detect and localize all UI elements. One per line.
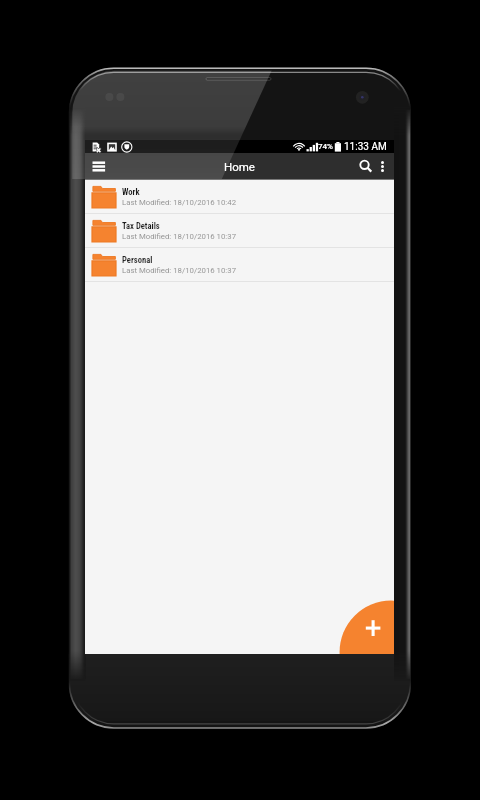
button[interactable]: Search (351, 154, 375, 178)
staticText: Last Modified: 18/10/2016 10:37 (122, 266, 237, 275)
staticText: 11:33 AM (344, 141, 387, 153)
staticText: Home (224, 160, 255, 173)
staticText: Work (122, 187, 140, 197)
staticText: Last Modified: 18/10/2016 10:37 (122, 232, 237, 241)
button[interactable]: Menu (85, 154, 110, 179)
staticText: Tax Details (122, 221, 160, 231)
button[interactable]: Personal (85, 248, 394, 282)
staticText: Personal (122, 255, 153, 265)
button[interactable]: Work (85, 180, 394, 214)
staticText: 74% (318, 142, 333, 151)
button[interactable]: Tax Details (85, 214, 394, 248)
button[interactable]: Add (338, 598, 394, 654)
staticText: Last Modified: 18/10/2016 10:42 (122, 198, 237, 207)
button[interactable]: More options (375, 157, 394, 176)
